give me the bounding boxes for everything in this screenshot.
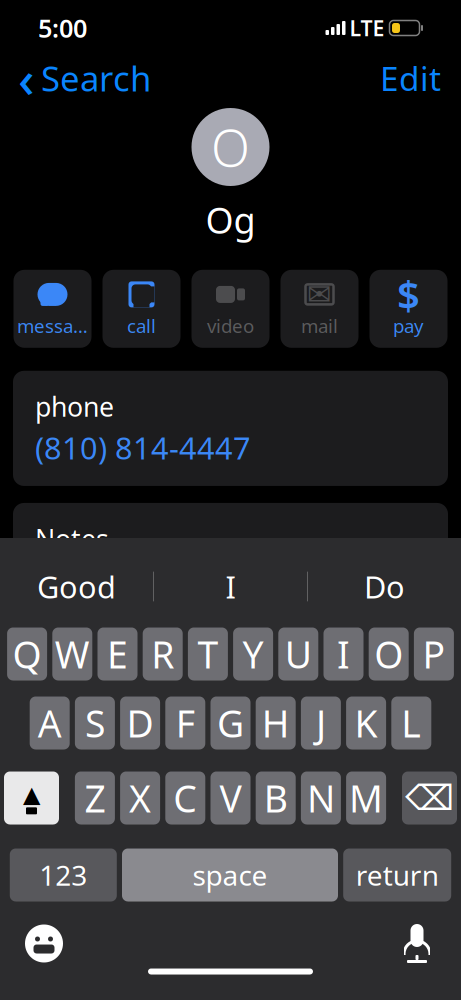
- button[interactable]: call: [102, 270, 180, 348]
- staticText: messa…: [17, 313, 88, 338]
- staticText: A: [38, 698, 62, 748]
- staticText: B: [264, 773, 288, 823]
- staticText: Z: [84, 773, 105, 823]
- button[interactable]: space: [122, 848, 338, 901]
- staticText: (810) 814-4447: [35, 427, 251, 468]
- button[interactable]: N: [301, 771, 341, 824]
- staticText: M: [349, 773, 383, 823]
- staticText: O: [211, 113, 250, 181]
- staticText: U: [285, 629, 312, 679]
- button[interactable]: $: [369, 270, 447, 348]
- staticText: ✉: [307, 278, 332, 311]
- staticText: D: [127, 698, 154, 748]
- staticText: 123: [39, 856, 87, 894]
- button[interactable]: Dictation: [389, 915, 445, 971]
- staticText: X: [129, 773, 151, 823]
- button[interactable]: U: [278, 627, 318, 680]
- button[interactable]: E: [97, 627, 137, 680]
- staticText: K: [355, 698, 378, 748]
- button[interactable]: C: [165, 771, 205, 824]
- button[interactable]: A: [30, 696, 70, 749]
- button[interactable]: X: [120, 771, 160, 824]
- staticText: S: [85, 698, 105, 748]
- button[interactable]: W: [52, 627, 92, 680]
- button[interactable]: return: [343, 848, 451, 901]
- button[interactable]: Edit: [364, 56, 457, 100]
- staticText: call: [127, 313, 156, 338]
- staticText: E: [107, 629, 128, 679]
- button[interactable]: L: [391, 696, 431, 749]
- staticText: I: [225, 566, 235, 607]
- staticText: R: [151, 629, 174, 679]
- staticText: space: [192, 856, 267, 894]
- staticText: Y: [243, 629, 264, 679]
- button[interactable]: 123: [10, 848, 117, 901]
- button[interactable]: Do: [308, 555, 461, 617]
- button[interactable]: ‹: [4, 56, 165, 100]
- staticText: Og: [205, 196, 255, 244]
- button[interactable]: ✉: [280, 270, 358, 348]
- button[interactable]: V: [210, 771, 250, 824]
- staticText: video: [207, 313, 254, 338]
- button[interactable]: Y: [233, 627, 273, 680]
- button[interactable]: I: [154, 555, 307, 617]
- staticText: Edit: [380, 56, 441, 100]
- staticText: V: [219, 773, 241, 823]
- staticText: return: [356, 856, 439, 894]
- staticText: T: [197, 629, 218, 679]
- button[interactable]: Z: [75, 771, 115, 824]
- button[interactable]: Good: [0, 555, 153, 617]
- button[interactable]: S: [75, 696, 115, 749]
- staticText: ⌫: [405, 778, 454, 818]
- staticText: H: [262, 698, 290, 748]
- button[interactable]: K: [346, 696, 386, 749]
- button[interactable]: video: [191, 270, 269, 348]
- staticText: ‹: [18, 44, 35, 112]
- staticText: Search: [41, 55, 151, 101]
- button[interactable]: T: [188, 627, 228, 680]
- button[interactable]: Delete: [402, 771, 457, 824]
- button[interactable]: Emoji: [16, 915, 72, 971]
- button[interactable]: D: [120, 696, 160, 749]
- staticText: P: [422, 629, 445, 679]
- staticText: ▲: [23, 782, 40, 807]
- staticText: Do: [364, 566, 405, 607]
- button[interactable]: Q: [7, 627, 47, 680]
- staticText: Good: [37, 566, 116, 607]
- staticText: mail: [301, 313, 338, 338]
- button[interactable]: P: [414, 627, 454, 680]
- staticText: C: [173, 773, 197, 823]
- button[interactable]: Shift: [4, 771, 59, 824]
- staticText: LTE: [349, 14, 384, 42]
- staticText: pay: [393, 313, 424, 338]
- staticText: phone: [35, 389, 114, 424]
- button[interactable]: M: [346, 771, 386, 824]
- button[interactable]: O: [369, 627, 409, 680]
- button[interactable]: I: [323, 627, 363, 680]
- button[interactable]: H: [256, 696, 296, 749]
- staticText: O: [374, 629, 403, 679]
- staticText: 5:00: [38, 11, 87, 45]
- staticText: N: [307, 773, 335, 823]
- button[interactable]: messa…: [13, 270, 91, 348]
- staticText: J: [316, 698, 326, 748]
- button[interactable]: G: [210, 696, 250, 749]
- staticText: L: [401, 698, 421, 748]
- staticText: $: [397, 268, 420, 321]
- staticText: W: [55, 629, 90, 679]
- button[interactable]: J: [301, 696, 341, 749]
- staticText: G: [217, 698, 244, 748]
- staticText: F: [176, 698, 195, 748]
- button[interactable]: F: [165, 696, 205, 749]
- staticText: Notes: [35, 521, 109, 556]
- staticText: Q: [13, 629, 42, 679]
- staticText: I: [337, 629, 350, 679]
- button[interactable]: B: [256, 771, 296, 824]
- button[interactable]: R: [143, 627, 183, 680]
- button[interactable]: phone: [13, 371, 448, 486]
